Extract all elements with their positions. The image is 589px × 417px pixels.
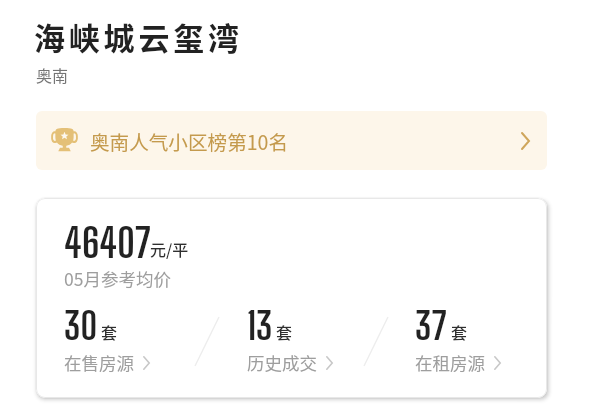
staticText: 在租房源 bbox=[415, 350, 485, 375]
staticText: 13 bbox=[247, 303, 273, 348]
staticText: 在售房源 bbox=[64, 350, 134, 375]
staticText: 奥南 bbox=[36, 63, 69, 86]
button[interactable]: Trophy bbox=[36, 111, 547, 170]
staticText: 套 bbox=[451, 320, 468, 343]
staticText: 30 bbox=[64, 303, 98, 348]
button[interactable]: 37 bbox=[415, 303, 547, 375]
staticText: 套 bbox=[101, 320, 118, 343]
button[interactable]: 30 bbox=[64, 303, 204, 375]
staticText: 海峡城云玺湾 bbox=[34, 14, 243, 59]
staticText: 历史成交 bbox=[247, 350, 317, 375]
staticText: 46407 bbox=[64, 219, 152, 267]
staticText: 05月参考均价 bbox=[64, 266, 171, 291]
staticText: 元/平 bbox=[150, 237, 189, 260]
other: Trophy bbox=[50, 125, 79, 152]
staticText: 奥南人气小区榜第10名 bbox=[90, 127, 289, 155]
staticText: 套 bbox=[276, 320, 293, 343]
staticText: 37 bbox=[415, 303, 448, 348]
button[interactable]: 13 bbox=[247, 303, 387, 375]
